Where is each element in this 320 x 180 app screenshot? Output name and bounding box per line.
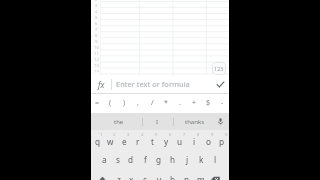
button[interactable]: 123 bbox=[212, 62, 226, 75]
staticText: r bbox=[136, 136, 140, 147]
button[interactable]: g bbox=[152, 149, 166, 169]
button[interactable]: , bbox=[131, 94, 145, 114]
button[interactable]: c bbox=[138, 169, 152, 180]
button[interactable]: Accept bbox=[211, 75, 229, 93]
staticText: 9 bbox=[95, 39, 98, 45]
staticText: + bbox=[192, 98, 197, 108]
staticText: ) bbox=[123, 98, 126, 108]
staticText: e bbox=[122, 136, 127, 147]
button[interactable]: j bbox=[180, 149, 194, 169]
button[interactable]: 8 bbox=[187, 130, 201, 149]
staticText: c bbox=[143, 174, 147, 180]
staticText: - bbox=[221, 98, 224, 108]
staticText: , bbox=[137, 98, 139, 108]
staticText: p bbox=[219, 136, 225, 147]
button[interactable]: * bbox=[159, 94, 173, 114]
button[interactable]: 9 bbox=[201, 130, 215, 149]
staticText: d bbox=[128, 154, 134, 165]
staticText: 14 bbox=[94, 69, 99, 72]
staticText: I bbox=[156, 118, 159, 126]
staticText: i bbox=[193, 136, 196, 147]
staticText: 11 bbox=[94, 51, 99, 57]
button[interactable]: h bbox=[166, 149, 180, 169]
button[interactable]: / bbox=[145, 94, 159, 114]
staticText: 4 bbox=[141, 132, 144, 137]
button[interactable]: ) bbox=[117, 94, 131, 114]
staticText: s bbox=[116, 154, 120, 165]
staticText: x bbox=[129, 174, 134, 180]
button[interactable]: 0 bbox=[215, 130, 229, 149]
button[interactable]: 5 bbox=[145, 130, 159, 149]
button[interactable]: s bbox=[111, 149, 124, 169]
staticText: n bbox=[184, 174, 190, 180]
staticText: 2 bbox=[113, 132, 116, 137]
button[interactable]: I bbox=[142, 113, 173, 130]
staticText: * bbox=[164, 98, 168, 108]
staticText: 6 bbox=[169, 132, 172, 137]
button[interactable]: Shift bbox=[95, 169, 109, 180]
button[interactable]: 7 bbox=[173, 130, 187, 149]
staticText: 5 bbox=[155, 132, 158, 137]
staticText: a bbox=[102, 154, 107, 165]
staticText: v bbox=[157, 174, 162, 180]
button[interactable]: f bbox=[138, 149, 152, 169]
staticText: u bbox=[177, 136, 183, 147]
staticText: thanks bbox=[185, 118, 205, 126]
staticText: . bbox=[179, 98, 181, 108]
button[interactable]: z bbox=[112, 169, 125, 180]
button[interactable]: 6 bbox=[159, 130, 173, 149]
staticText: 6 bbox=[95, 21, 98, 27]
staticText: 10 bbox=[94, 45, 99, 51]
button[interactable]: + bbox=[187, 94, 201, 114]
staticText: 2 bbox=[95, 0, 98, 3]
button[interactable]: m bbox=[194, 169, 208, 180]
staticText: fx bbox=[98, 79, 105, 90]
button[interactable]: n bbox=[180, 169, 194, 180]
staticText: Enter text or formula bbox=[116, 79, 190, 89]
staticText: g bbox=[156, 154, 162, 165]
staticText: 8 bbox=[197, 132, 200, 137]
staticText: the bbox=[114, 118, 124, 126]
button[interactable]: Backspace bbox=[208, 169, 222, 180]
button[interactable]: d bbox=[124, 149, 138, 169]
button[interactable]: Voice input bbox=[211, 113, 229, 130]
button[interactable]: $ bbox=[201, 94, 215, 114]
staticText: 1 bbox=[100, 132, 103, 137]
staticText: 7 bbox=[183, 132, 186, 137]
staticText: w bbox=[107, 136, 114, 147]
button[interactable]: 4 bbox=[131, 130, 145, 149]
button[interactable]: a bbox=[98, 149, 111, 169]
staticText: = bbox=[95, 98, 100, 108]
button[interactable]: v bbox=[152, 169, 166, 180]
button[interactable]: . bbox=[173, 94, 187, 114]
staticText: / bbox=[151, 98, 154, 108]
button[interactable]: 1 bbox=[91, 130, 104, 149]
staticText: ( bbox=[109, 98, 112, 108]
button[interactable]: - bbox=[215, 94, 229, 114]
staticText: q bbox=[95, 136, 101, 147]
staticText: 7 bbox=[95, 27, 98, 33]
button[interactable]: thanks bbox=[176, 113, 214, 130]
button[interactable]: 2 bbox=[104, 130, 117, 149]
button[interactable]: k bbox=[194, 149, 208, 169]
staticText: 9 bbox=[211, 132, 214, 137]
staticText: $ bbox=[206, 98, 211, 108]
button[interactable]: the bbox=[93, 113, 144, 130]
button[interactable]: = bbox=[91, 94, 104, 114]
staticText: l bbox=[214, 154, 217, 165]
button[interactable]: l bbox=[208, 149, 222, 169]
staticText: 13 bbox=[94, 63, 99, 69]
staticText: 4 bbox=[95, 9, 98, 15]
staticText: y bbox=[164, 136, 169, 147]
button[interactable]: Enter text or formula bbox=[116, 75, 211, 93]
button[interactable]: Insert function bbox=[91, 75, 111, 93]
button[interactable]: x bbox=[125, 169, 138, 180]
staticText: 3 bbox=[95, 3, 98, 9]
button[interactable]: 3 bbox=[117, 130, 131, 149]
staticText: b bbox=[170, 174, 176, 180]
staticText: 0 bbox=[225, 132, 228, 137]
staticText: 5 bbox=[95, 15, 98, 21]
button[interactable]: ( bbox=[104, 94, 117, 114]
staticText: f bbox=[144, 154, 147, 165]
button[interactable]: b bbox=[166, 169, 180, 180]
